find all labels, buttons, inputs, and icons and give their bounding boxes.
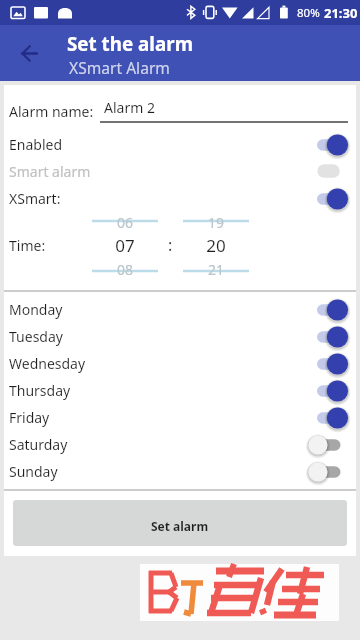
button[interactable]: Saturday xyxy=(4,431,356,458)
staticText: Enabled xyxy=(9,135,63,154)
staticText: 20 xyxy=(183,234,249,257)
button[interactable]: Back xyxy=(9,33,49,73)
staticText: Sunday xyxy=(9,462,58,481)
staticText: Monday xyxy=(9,300,63,319)
button[interactable]: Sunday xyxy=(4,458,356,485)
staticText: 80% xyxy=(297,5,320,21)
button[interactable]: Smart alarm xyxy=(4,158,356,185)
staticText: 06 xyxy=(92,213,158,232)
staticText: Thursday xyxy=(9,381,71,400)
staticText: Friday xyxy=(9,408,50,427)
staticText: Set alarm xyxy=(151,518,209,534)
staticText: XSmart Alarm xyxy=(69,57,170,78)
staticText: Set the alarm xyxy=(67,31,193,57)
staticText: : xyxy=(168,234,173,256)
button[interactable]: Monday xyxy=(4,296,356,323)
staticText: Tuesday xyxy=(9,327,63,346)
staticText: 08 xyxy=(92,260,158,279)
button[interactable]: Tuesday xyxy=(4,323,356,350)
button[interactable]: Wednesday xyxy=(4,350,356,377)
staticText: Time: xyxy=(9,236,46,255)
staticText: Saturday xyxy=(9,435,68,454)
staticText: 07 xyxy=(92,234,158,257)
button[interactable]: Thursday xyxy=(4,377,356,404)
button[interactable]: Set alarm xyxy=(13,500,347,546)
staticText: Alarm 2 xyxy=(104,98,155,117)
button[interactable]: Enabled xyxy=(4,131,356,158)
button[interactable]: Friday xyxy=(4,404,356,431)
staticText: XSmart: xyxy=(9,189,61,208)
staticText: 19 xyxy=(183,213,249,232)
button[interactable]: XSmart: xyxy=(4,185,356,212)
staticText: Alarm name: xyxy=(9,102,94,121)
staticText: 21:30 xyxy=(324,4,358,22)
staticText: 21 xyxy=(183,260,249,279)
staticText: Wednesday xyxy=(9,354,86,373)
staticText: Smart alarm xyxy=(9,162,91,181)
